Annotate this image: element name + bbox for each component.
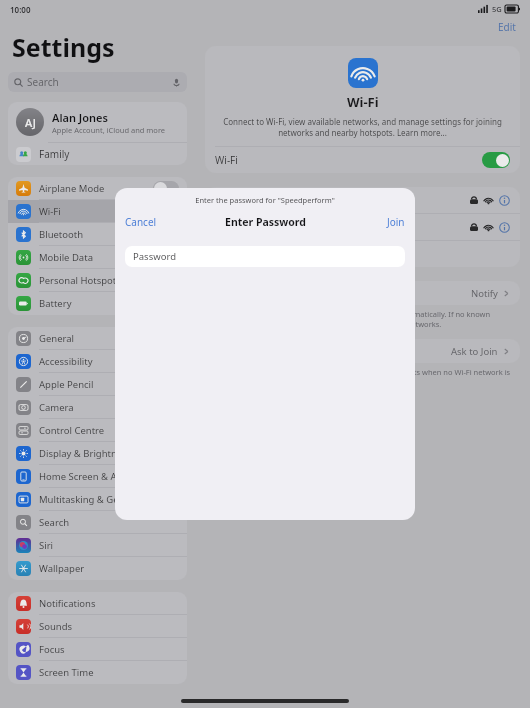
- button[interactable]: Network info: [205, 187, 520, 213]
- staticText: Enter Password: [225, 215, 306, 229]
- button[interactable]: Network info: [205, 214, 520, 240]
- staticText: Notify: [471, 287, 498, 300]
- button[interactable]: Bluetooth: [8, 223, 187, 246]
- button[interactable]: Wallpaper: [8, 557, 187, 580]
- staticText: Battery: [39, 297, 72, 310]
- staticText: Multitasking & Gestures: [39, 493, 147, 506]
- staticText: Personal Hotspot: [39, 274, 117, 287]
- staticText: Display & Brightness: [39, 447, 132, 460]
- button[interactable]: Apple Pencil: [8, 373, 187, 396]
- button[interactable]: Notify: [205, 281, 520, 305]
- staticText: Ask to join networks. Known networks wil…: [213, 309, 512, 329]
- staticText: Home Screen & App Library: [39, 470, 162, 483]
- button[interactable]: Edit: [494, 18, 520, 36]
- staticText: Wi-Fi: [39, 205, 61, 218]
- button[interactable]: Camera: [8, 396, 187, 419]
- staticText: Edit: [498, 20, 516, 34]
- button[interactable]: Focus: [8, 638, 187, 661]
- button[interactable]: AJ: [8, 102, 187, 142]
- button[interactable]: Ask to Join: [205, 339, 520, 363]
- staticText: Ask to Join: [451, 345, 498, 358]
- staticText: Notifications: [39, 597, 96, 610]
- staticText: Apple Account, iCloud and more: [52, 125, 166, 135]
- button[interactable]: Search: [8, 72, 187, 92]
- staticText: Mobile Data: [39, 251, 93, 264]
- button[interactable]: Display & Brightness: [8, 442, 187, 465]
- staticText: General: [39, 332, 75, 345]
- button[interactable]: Wi-Fi: [205, 147, 520, 173]
- staticText: Search: [39, 516, 70, 529]
- staticText: Wi-Fi: [215, 153, 238, 167]
- button[interactable]: Personal Hotspot: [8, 269, 187, 292]
- staticText: Accessibility: [39, 355, 93, 368]
- staticText: Apple Pencil: [39, 378, 94, 391]
- button[interactable]: Network info: [499, 195, 510, 206]
- staticText: Siri: [39, 539, 54, 552]
- button[interactable]: [205, 241, 520, 267]
- staticText: Join: [387, 215, 405, 229]
- button[interactable]: Multitasking & Gestures: [8, 488, 187, 511]
- staticText: Bluetooth: [39, 228, 84, 241]
- staticText: 5G: [492, 4, 502, 14]
- other: Wi-Fi on: [482, 152, 510, 168]
- staticText: 10:00: [10, 4, 31, 15]
- button[interactable]: Family: [8, 143, 187, 165]
- staticText: Sounds: [39, 620, 73, 633]
- staticText: Enter the password for "Speedperform": [115, 195, 415, 205]
- button[interactable]: Sounds: [8, 615, 187, 638]
- staticText: Settings: [12, 30, 115, 64]
- staticText: Focus: [39, 643, 65, 656]
- button[interactable]: Siri: [8, 534, 187, 557]
- staticText: Search: [27, 75, 59, 89]
- staticText: Password: [133, 250, 176, 263]
- staticText: Family: [39, 147, 70, 161]
- staticText: Screen Time: [39, 666, 94, 679]
- button[interactable]: Mobile Data: [8, 246, 187, 269]
- button[interactable]: Notifications: [8, 592, 187, 615]
- button[interactable]: Control Centre: [8, 419, 187, 442]
- staticText: Wallpaper: [39, 562, 85, 575]
- button[interactable]: Airplane Mode toggle: [153, 181, 179, 196]
- button[interactable]: Battery: [8, 292, 187, 315]
- staticText: Camera: [39, 401, 74, 414]
- button[interactable]: Wi-Fi: [8, 200, 187, 223]
- button[interactable]: Airplane Mode: [8, 177, 187, 200]
- button[interactable]: Screen Time: [8, 661, 187, 684]
- button[interactable]: Accessibility: [8, 350, 187, 373]
- staticText: Alan Jones: [52, 110, 108, 125]
- button[interactable]: Home Screen & App Library: [8, 465, 187, 488]
- button[interactable]: Search: [8, 511, 187, 534]
- button[interactable]: General: [8, 327, 187, 350]
- staticText: Control Centre: [39, 424, 105, 437]
- button[interactable]: Network info: [499, 222, 510, 233]
- button[interactable]: Cancel: [115, 212, 167, 232]
- staticText: AJ: [25, 115, 36, 130]
- button[interactable]: Password: [125, 246, 405, 267]
- staticText: Airplane Mode: [39, 182, 105, 195]
- button[interactable]: Join: [377, 212, 415, 232]
- staticText: Connect to Wi-Fi, view available network…: [215, 116, 510, 138]
- staticText: Wi-Fi: [347, 93, 379, 111]
- staticText: Cancel: [125, 215, 157, 229]
- staticText: Allow this device to automatically disco…: [213, 367, 512, 387]
